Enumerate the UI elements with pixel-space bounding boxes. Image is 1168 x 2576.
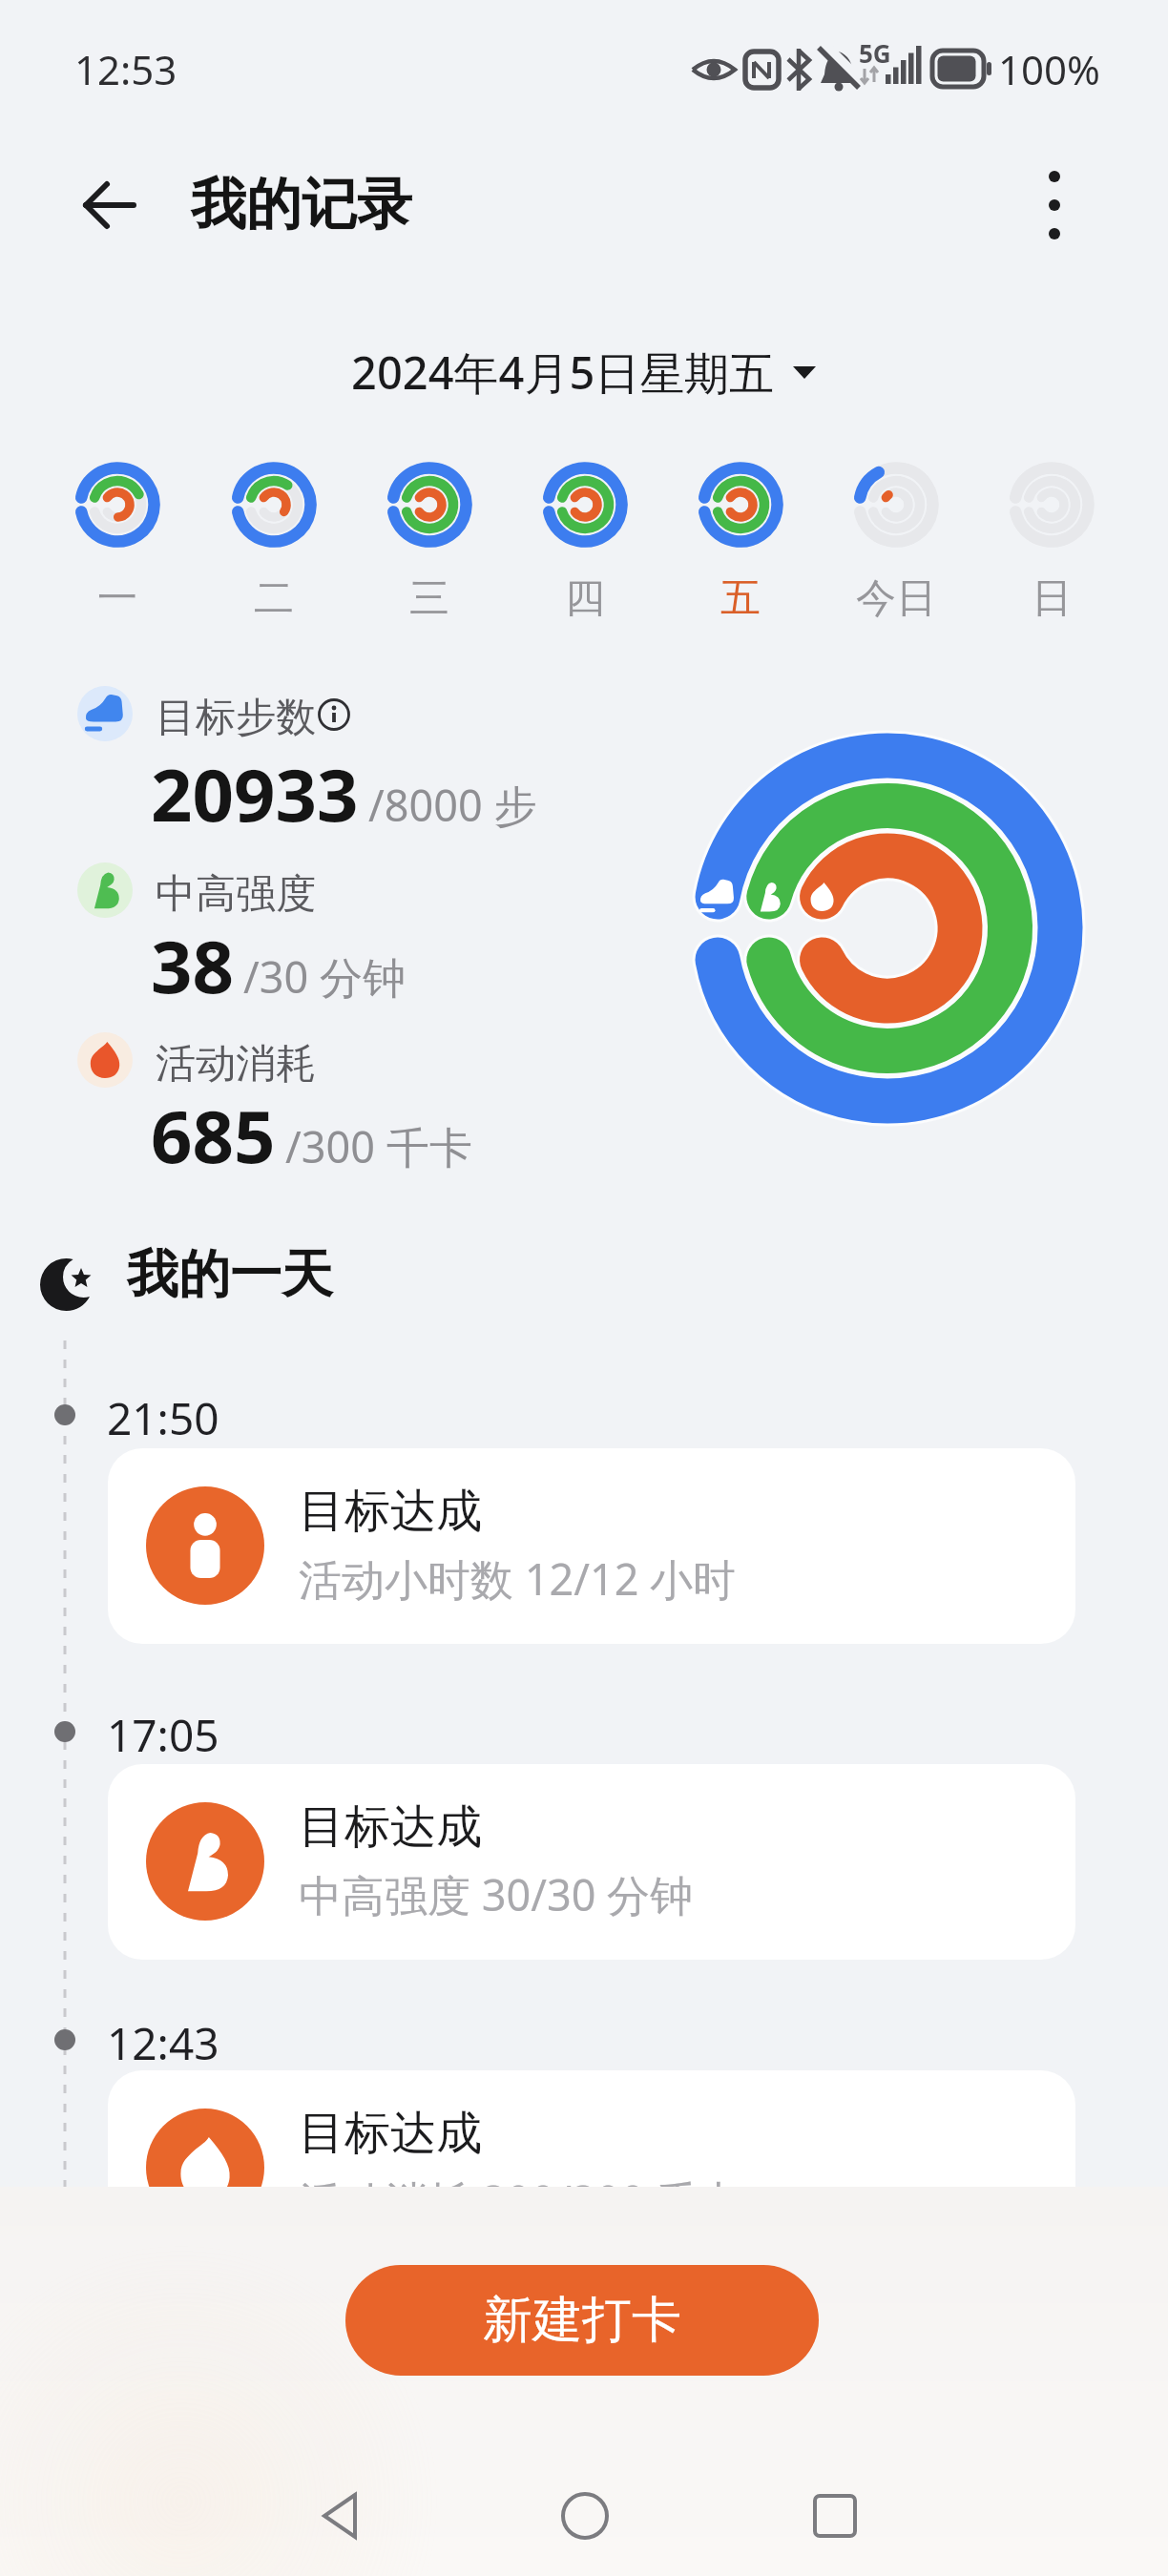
button[interactable]: 三 <box>351 459 507 624</box>
button[interactable]: 今日 <box>818 459 973 624</box>
button[interactable] <box>532 2471 637 2562</box>
staticText: 目标达成 <box>299 2105 482 2162</box>
staticText: 中高强度 30/30 分钟 <box>299 1865 694 1923</box>
button[interactable]: 一 <box>39 459 196 624</box>
staticText: 新建打卡 <box>483 2289 681 2352</box>
staticText: 二 <box>254 573 294 624</box>
button[interactable]: 日 <box>973 459 1129 624</box>
staticText: 2024年4月5日星期五 <box>351 342 775 399</box>
staticText: 21:50 <box>107 1388 219 1448</box>
staticText: 17:05 <box>107 1705 219 1765</box>
button[interactable] <box>1012 157 1097 253</box>
staticText: /8000 步 <box>368 776 537 834</box>
button[interactable]: 目标达成 <box>108 1764 1075 1960</box>
staticText: 目标达成 <box>299 1483 482 1540</box>
staticText: 四 <box>565 573 605 624</box>
button[interactable]: 目标达成 <box>108 2070 1075 2266</box>
staticText: 目标步数 <box>156 693 316 743</box>
staticText: 活动小时数 12/12 小时 <box>299 1549 737 1608</box>
staticText: 目标达成 <box>299 1798 482 1856</box>
button[interactable]: 目标达成 <box>108 1448 1075 1644</box>
staticText: 五 <box>720 573 761 624</box>
button[interactable]: 2024年4月5日星期五 <box>0 342 1168 399</box>
staticText: 38 <box>151 916 234 1015</box>
button[interactable] <box>782 2471 887 2562</box>
staticText: 我的记录 <box>191 170 412 239</box>
staticText: 12:53 <box>74 42 177 96</box>
button[interactable] <box>286 2471 391 2562</box>
staticText: 三 <box>409 573 449 624</box>
button[interactable]: 新建打卡 <box>345 2265 819 2376</box>
staticText: 12:43 <box>107 2013 219 2073</box>
button[interactable] <box>315 695 353 733</box>
staticText: 日 <box>1032 573 1072 624</box>
staticText: /300 千卡 <box>285 1117 472 1175</box>
button[interactable]: 二 <box>196 459 351 624</box>
button[interactable]: 四 <box>507 459 662 624</box>
staticText: 活动消耗 <box>156 1039 316 1090</box>
staticText: /30 分钟 <box>243 947 406 1006</box>
staticText: 一 <box>97 573 137 624</box>
button[interactable]: 五 <box>662 459 818 624</box>
button[interactable] <box>67 162 153 248</box>
staticText: 20933 <box>151 744 359 843</box>
staticText: 活动消耗 300/300 千卡 <box>299 2171 742 2230</box>
staticText: 中高强度 <box>156 869 316 920</box>
staticText: 100% <box>998 42 1100 96</box>
staticText: 685 <box>151 1086 276 1185</box>
staticText: 我的一天 <box>127 1242 333 1307</box>
staticText: 5G <box>859 36 891 70</box>
staticText: 今日 <box>856 573 936 624</box>
